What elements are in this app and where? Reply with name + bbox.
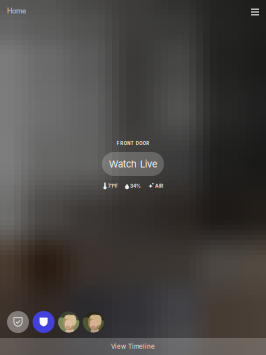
button[interactable]: Security armed [33, 311, 55, 333]
button[interactable]: Person recognised [58, 311, 79, 332]
staticText: AIR [155, 183, 163, 189]
staticText: View Timeline [111, 343, 155, 350]
staticText: 34% [130, 183, 141, 189]
button[interactable]: Home [7, 3, 41, 19]
staticText: Home [7, 7, 26, 15]
button[interactable]: Rooms [247, 4, 263, 20]
staticText: FRONT DOOR [117, 141, 149, 146]
button[interactable]: Watch Live [102, 152, 164, 176]
staticText: Watch Live [109, 158, 157, 170]
staticText: 71°F [108, 183, 118, 189]
button[interactable]: Activity [7, 311, 29, 333]
button[interactable]: View Timeline [0, 338, 266, 355]
button[interactable]: Person recognised [83, 311, 104, 332]
